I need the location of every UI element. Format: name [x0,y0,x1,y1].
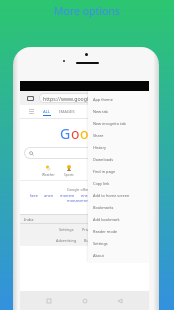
staticText: Add bookmark [93,217,120,222]
button[interactable]: New incognito tab [88,117,149,129]
staticText: Settings [93,241,108,246]
button[interactable]: https://www.google.com [40,94,144,102]
staticText: ALL [43,109,51,115]
staticText: Settings [59,227,74,232]
button[interactable]: App theme [88,93,149,105]
staticText: Weather [42,173,55,177]
staticText: G [60,124,71,143]
staticText: Reader mode [93,229,118,234]
staticText: e [102,124,110,143]
staticText: Bookmarks [93,205,114,210]
staticText: l [98,124,102,143]
staticText: Share [93,133,104,138]
staticText: Business [84,238,100,243]
staticText: g [89,124,98,143]
staticText: New incognito tab [93,121,126,126]
staticText: en [97,193,102,198]
staticText: monem [60,193,75,198]
button[interactable]: New tab [88,105,149,117]
staticText: India [24,217,34,222]
staticText: Advertising [56,238,77,243]
button[interactable]: Weather [38,164,58,177]
button[interactable]: Sports [59,164,79,177]
staticText: faee [30,193,38,198]
staticText: More options [54,4,120,18]
button[interactable]: Settings [88,237,149,249]
staticText: Privacy [82,227,95,232]
button[interactable]: Tabs [27,96,34,101]
button[interactable]: Recents [113,294,127,308]
button[interactable]: Find in page [88,165,149,177]
button[interactable]: Reader mode [88,225,149,237]
staticText: anen [44,193,54,198]
button[interactable]: Back [42,294,56,308]
staticText: Sports [64,173,74,177]
staticText: Find in page [93,169,116,174]
button[interactable]: Downloads [88,153,149,165]
button[interactable]: About [88,249,149,261]
staticText: Downloads [93,157,114,162]
staticText: IMAGES [59,109,75,115]
staticText: o [71,124,80,143]
button[interactable] [25,148,144,158]
staticText: New tab [93,109,108,114]
button[interactable]: Copy link [88,177,149,189]
button[interactable]: History [88,141,149,153]
staticText: monanernm [67,198,90,203]
staticText: o [80,124,89,143]
staticText: Google offered in: [67,187,99,192]
staticText: About [93,253,104,258]
button[interactable]: Share [88,129,149,141]
button[interactable]: Bookmarks [88,201,149,213]
staticText: enen [81,193,91,198]
staticText: Add to home screen [93,193,130,198]
button[interactable]: Home [78,294,92,308]
staticText: https://www.google.com [43,95,104,102]
button[interactable]: Add bookmark [88,213,149,225]
staticText: History [93,145,106,150]
staticText: Copy link [93,181,110,186]
button[interactable]: Add to home screen [88,189,149,201]
staticText: App theme [93,97,113,102]
